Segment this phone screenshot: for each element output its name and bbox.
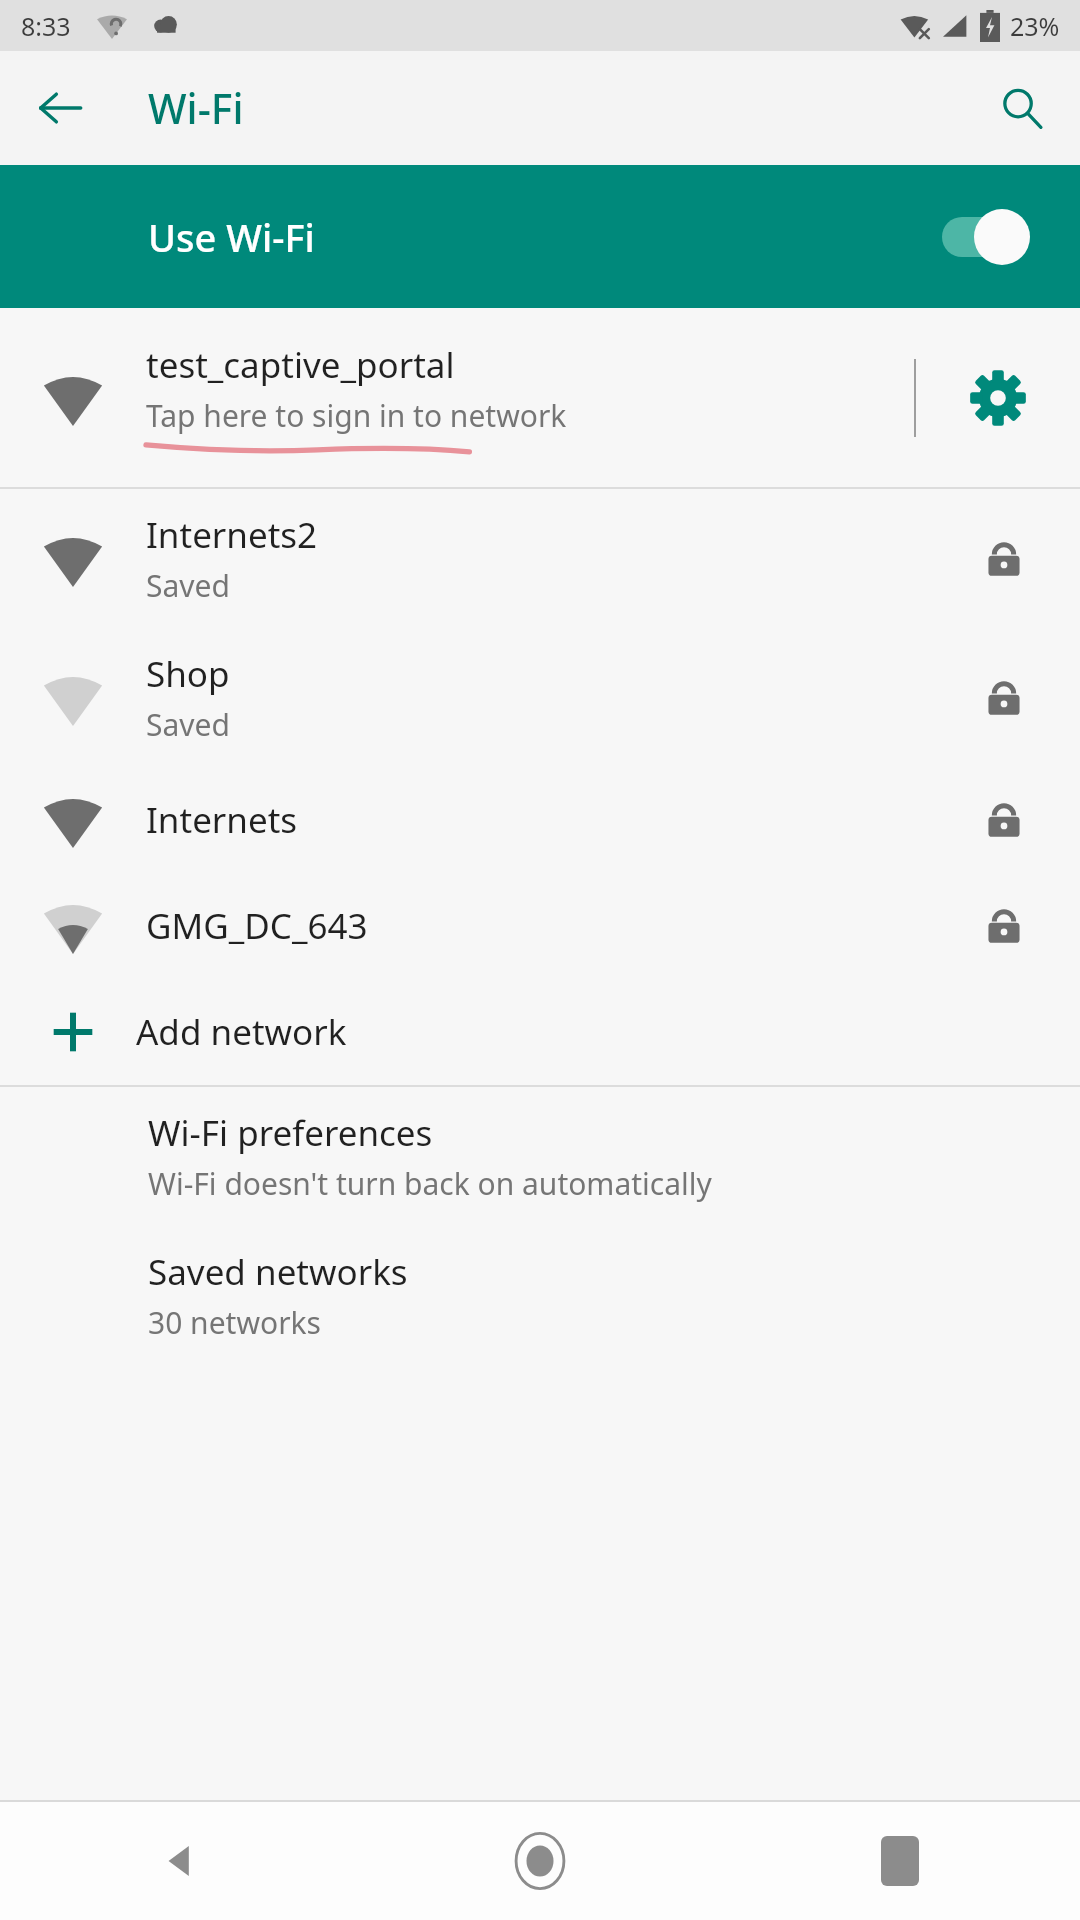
button[interactable]: Recents (720, 1802, 1080, 1920)
staticText: Wi-Fi doesn't turn back on automatically (148, 1163, 712, 1204)
button[interactable]: Back (22, 70, 98, 146)
staticText: Saved (146, 704, 230, 745)
staticText: 30 networks (148, 1302, 321, 1343)
staticText: 23% (1010, 9, 1060, 43)
staticText: Internets (146, 796, 298, 844)
button[interactable]: Add network (0, 979, 1080, 1085)
staticText: Wi-Fi preferences (148, 1109, 433, 1157)
staticText: Saved networks (148, 1248, 408, 1296)
button[interactable]: Use Wi-Fi (0, 165, 1080, 308)
staticText: Use Wi-Fi (148, 211, 315, 263)
staticText: Wi-Fi (148, 80, 244, 136)
staticText: Tap here to sign in to network (146, 395, 567, 436)
button[interactable]: Search (984, 70, 1060, 146)
staticText: 8:33 (21, 9, 71, 43)
staticText: GMG_DC_643 (146, 902, 368, 950)
button[interactable]: Back (0, 1802, 360, 1920)
staticText: Saved (146, 565, 230, 606)
button[interactable]: Shop (0, 628, 1080, 767)
button[interactable]: test_captive_portal (0, 308, 914, 487)
button[interactable]: Internets2 (0, 489, 1080, 628)
button[interactable]: Wi-Fi preferences (0, 1087, 1080, 1226)
staticText: Internets2 (146, 511, 318, 559)
button[interactable]: Internets (0, 767, 1080, 873)
button[interactable]: Saved networks (0, 1226, 1080, 1365)
button[interactable]: Home (360, 1802, 720, 1920)
button[interactable]: GMG_DC_643 (0, 873, 1080, 979)
staticText: Shop (146, 650, 230, 698)
button[interactable]: Network settings (916, 308, 1080, 487)
staticText: test_captive_portal (146, 341, 455, 389)
staticText: Add network (136, 1008, 347, 1056)
